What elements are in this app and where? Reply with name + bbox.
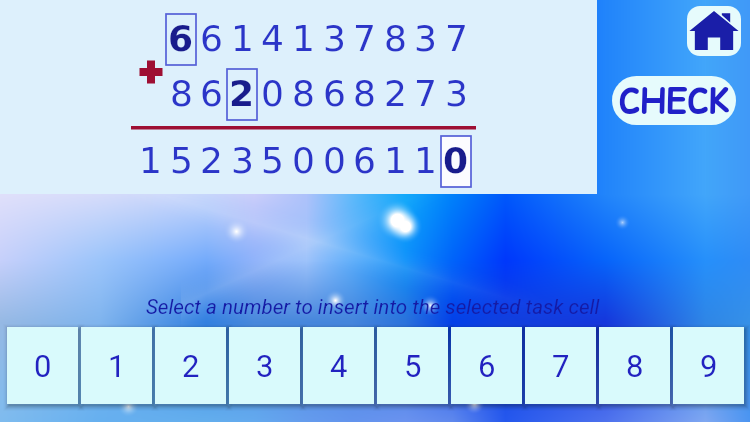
staticText: 9 (700, 348, 718, 384)
staticText: 2 (200, 140, 223, 182)
staticText: 5 (170, 140, 193, 182)
staticText: 7 (445, 18, 468, 60)
staticText: 1 (108, 348, 126, 384)
staticText: 2 (182, 348, 200, 384)
staticText: 0 (34, 348, 52, 384)
button[interactable]: 1 (81, 327, 152, 404)
button[interactable]: 4 (303, 327, 374, 404)
button[interactable]: 0 (7, 327, 78, 404)
staticText: 1 (292, 18, 315, 60)
button[interactable]: 7 (525, 327, 596, 404)
staticText: 4 (330, 348, 348, 384)
staticText: 8 (353, 73, 376, 115)
staticText: 2 (229, 73, 255, 115)
staticText: 7 (552, 348, 570, 384)
staticText: 5 (404, 348, 422, 384)
staticText: 3 (256, 348, 274, 384)
staticText: 7 (353, 18, 376, 60)
staticText: 4 (261, 18, 284, 60)
staticText: 0 (323, 140, 346, 182)
staticText: 6 (200, 73, 223, 115)
staticText: 8 (292, 73, 315, 115)
staticText: 1 (414, 140, 437, 182)
staticText: 6 (200, 18, 223, 60)
staticText: 6 (353, 140, 376, 182)
button[interactable]: 2 (155, 327, 226, 404)
staticText: 2 (384, 73, 407, 115)
staticText: 0 (292, 140, 315, 182)
staticText: 3 (414, 18, 437, 60)
staticText: 5 (261, 140, 284, 182)
staticText: 6 (323, 73, 346, 115)
staticText: 3 (323, 18, 346, 60)
staticText: 3 (445, 73, 468, 115)
staticText: 0 (443, 140, 469, 182)
button[interactable] (166, 14, 196, 65)
staticText: 3 (231, 140, 254, 182)
button[interactable]: 3 (229, 327, 300, 404)
button[interactable]: 5 (377, 327, 448, 404)
staticText: 8 (384, 18, 407, 60)
staticText: 1 (231, 18, 254, 60)
staticText: 8 (626, 348, 644, 384)
button[interactable] (441, 136, 471, 187)
staticText: 8 (170, 73, 193, 115)
button[interactable] (227, 69, 257, 120)
button[interactable]: CHECK (612, 76, 736, 125)
button[interactable]: 9 (673, 327, 744, 404)
staticText: 0 (261, 73, 284, 115)
staticText: Select a number to insert into the selec… (146, 295, 600, 319)
staticText: 1 (384, 140, 407, 182)
button[interactable]: Home (687, 6, 741, 56)
staticText: 6 (478, 348, 496, 384)
staticText: CHECK (619, 77, 730, 124)
staticText: 7 (414, 73, 437, 115)
staticText: 1 (139, 140, 162, 182)
staticText: 6 (168, 18, 194, 60)
button[interactable]: 8 (599, 327, 670, 404)
button[interactable]: 6 (451, 327, 522, 404)
